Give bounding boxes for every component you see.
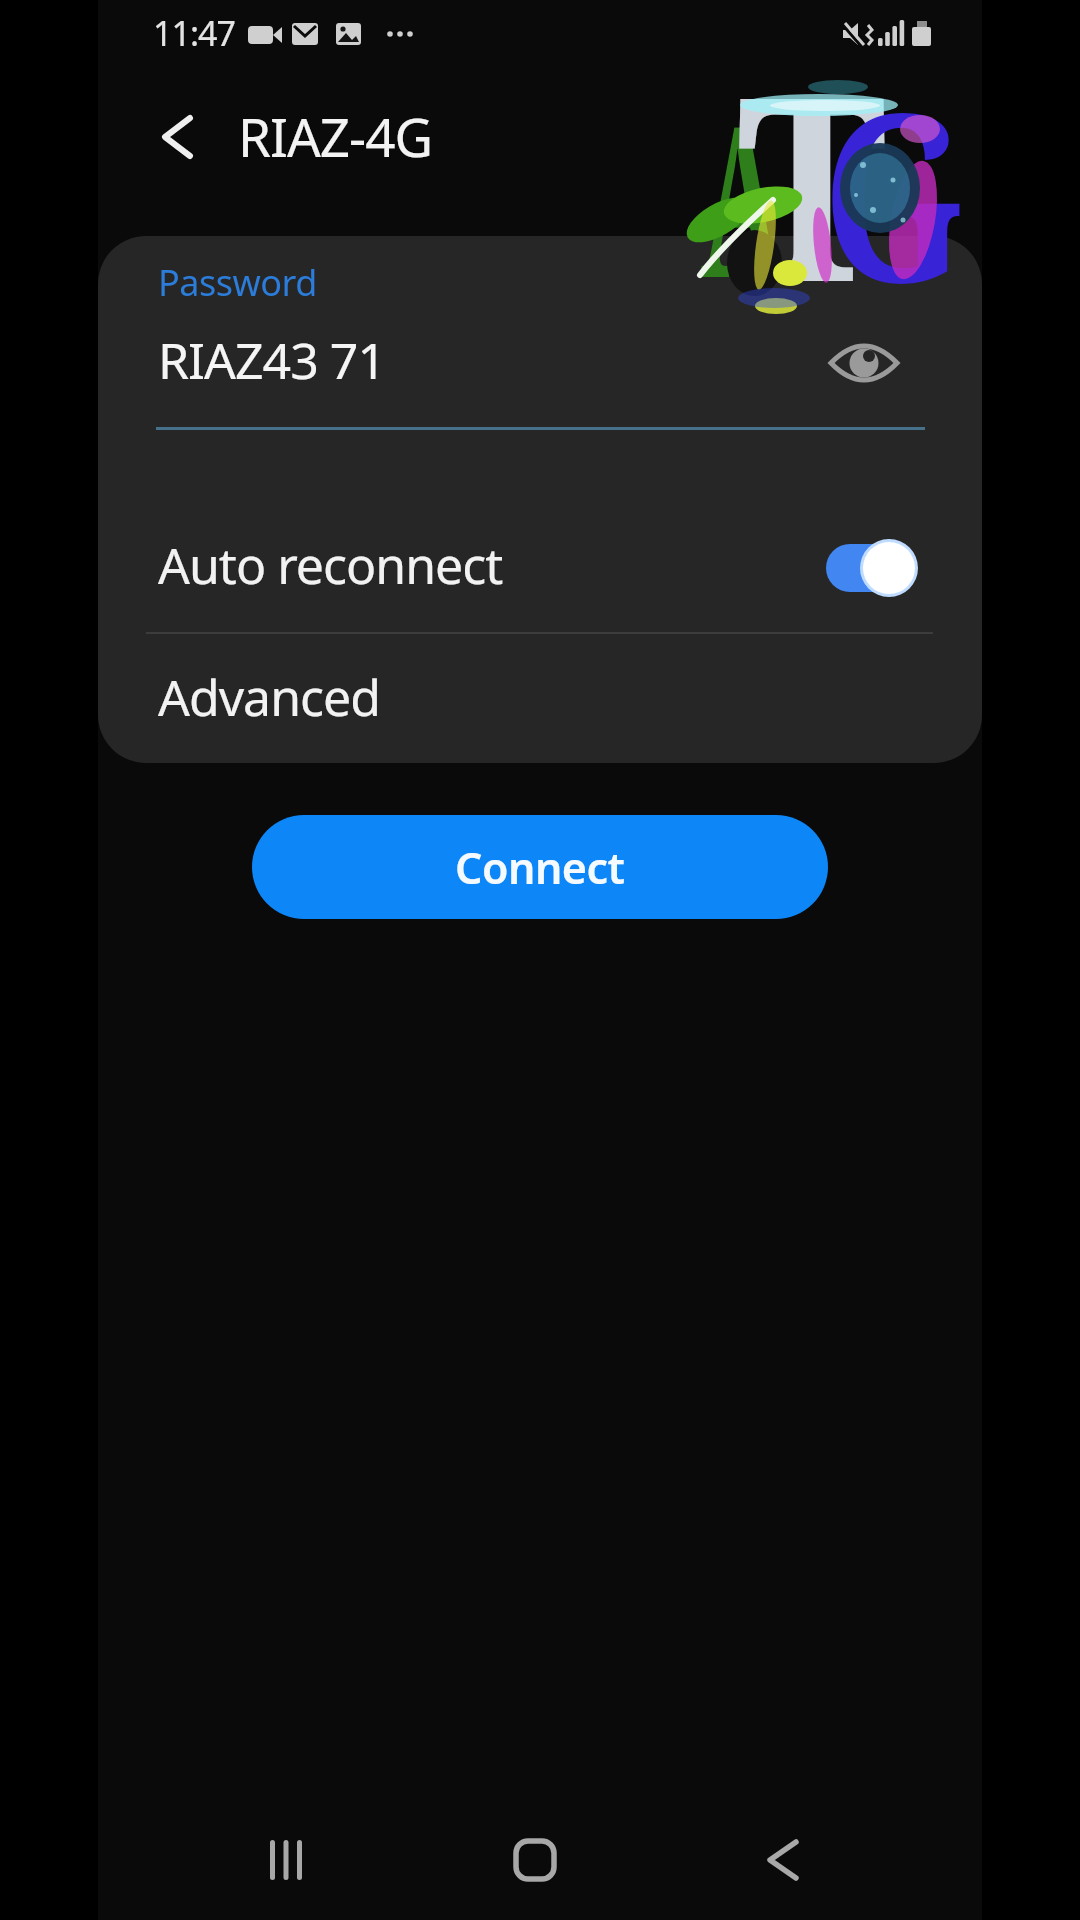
button[interactable] (138, 105, 208, 175)
staticText: Password (158, 258, 317, 307)
button[interactable] (820, 332, 908, 394)
button[interactable] (98, 236, 982, 430)
staticText: RIAZ43 71 (158, 326, 385, 394)
staticText: Connect (455, 838, 625, 897)
button[interactable] (746, 1825, 816, 1895)
button[interactable]: Connect (252, 815, 828, 919)
button[interactable]: Advanced (98, 634, 982, 763)
staticText: G (822, 33, 966, 351)
button[interactable] (251, 1825, 321, 1895)
staticText: RIAZ-4G (238, 100, 433, 172)
staticText: T (737, 8, 888, 356)
staticText: Advanced (158, 663, 380, 731)
button[interactable] (500, 1825, 570, 1895)
button[interactable]: Auto reconnect (98, 503, 982, 632)
staticText: A (701, 53, 781, 339)
staticText: Auto reconnect (158, 531, 503, 599)
staticText: 11:47 (153, 10, 235, 56)
